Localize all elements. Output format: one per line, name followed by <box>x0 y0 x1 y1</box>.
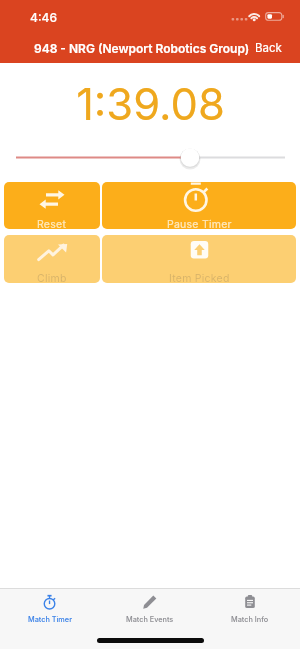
staticText: 1:39.08 <box>76 78 225 131</box>
button[interactable]: Reset <box>4 182 100 229</box>
staticText: Pause Timer <box>167 218 232 229</box>
staticText: Climb <box>37 272 67 283</box>
button[interactable]: Item Picked <box>102 235 296 283</box>
button[interactable]: Back <box>255 41 282 55</box>
staticText: Match Events <box>126 615 174 624</box>
staticText: Reset <box>37 218 67 229</box>
button[interactable]: Match Info <box>200 589 300 635</box>
staticText: Back <box>255 41 282 55</box>
staticText: 4:46 <box>30 10 57 25</box>
staticText: Match Info <box>231 615 269 624</box>
button[interactable]: Match Timer <box>0 589 100 635</box>
button[interactable]: Match Events <box>100 589 200 635</box>
button[interactable]: Climb <box>4 235 100 283</box>
staticText: 948 - NRG (Newport Robotics Group) <box>34 41 250 56</box>
button[interactable]: Pause Timer <box>102 182 296 229</box>
staticText: Item Picked <box>169 272 230 283</box>
button[interactable] <box>0 142 300 182</box>
staticText: Match Timer <box>28 615 72 624</box>
